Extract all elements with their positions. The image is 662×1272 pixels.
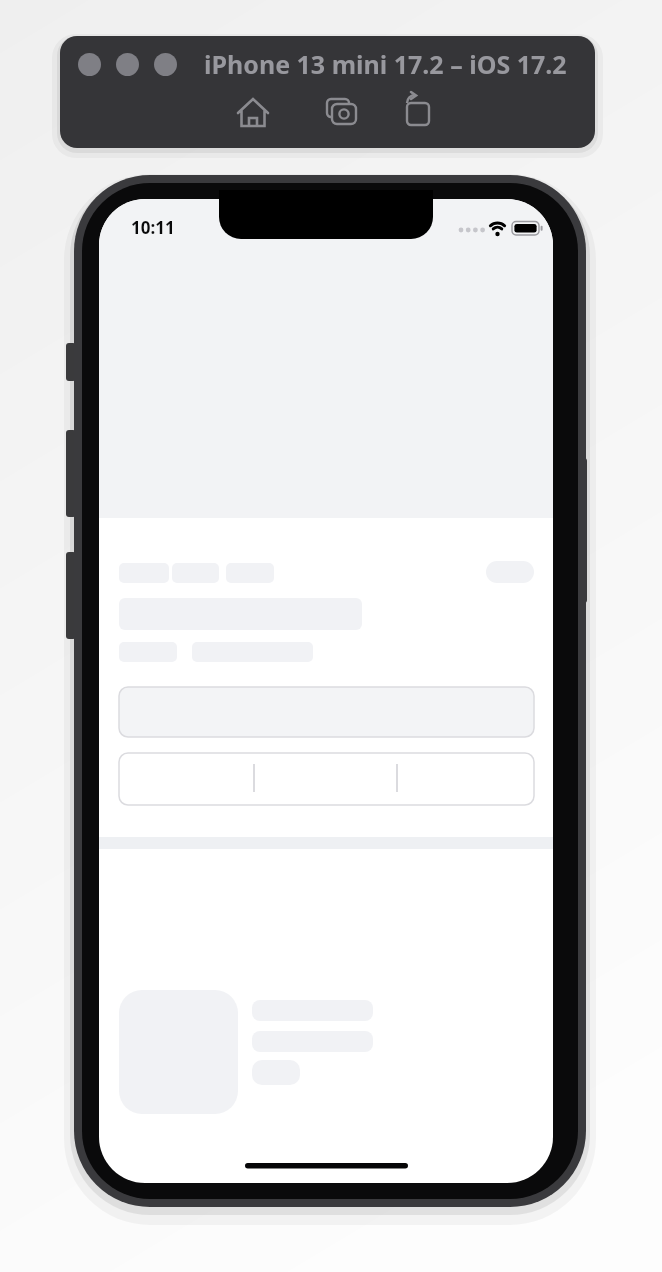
staticText: iPhone 13 mini 17.2 – iOS 17.2: [204, 47, 567, 81]
button[interactable]: [396, 90, 440, 134]
staticText: 10:11: [131, 216, 175, 239]
button[interactable]: [231, 90, 275, 134]
button[interactable]: [319, 90, 363, 134]
